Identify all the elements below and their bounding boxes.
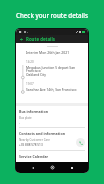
staticText: 14:20 xyxy=(26,60,34,64)
staticText: Service Calendar xyxy=(19,154,49,159)
button[interactable]: Recents xyxy=(68,164,75,171)
staticText: Bus plate xyxy=(19,116,32,120)
staticText: Megabus Junction 5 depart San Francisco … xyxy=(26,65,85,77)
staticText: Sanchez Ave 14th, San Francisco xyxy=(26,87,77,91)
staticText: Contacts and information xyxy=(19,131,65,136)
button[interactable]: Back xyxy=(19,37,24,42)
staticText: Route details xyxy=(26,36,55,42)
button[interactable]: Back xyxy=(29,164,36,171)
staticText: Nearby Customer Care xyxy=(19,138,50,142)
staticText: Interim Mon 26th Jan 2021 xyxy=(26,50,70,55)
staticText: +35 888 578 513 xyxy=(19,143,43,147)
button[interactable]: Home xyxy=(49,164,56,171)
button[interactable]: Call xyxy=(76,138,85,147)
staticText: 19:07 xyxy=(26,82,34,86)
staticText: - xyxy=(19,121,20,125)
staticText: Check your route details xyxy=(16,11,88,19)
staticText: Bus information xyxy=(19,109,48,114)
